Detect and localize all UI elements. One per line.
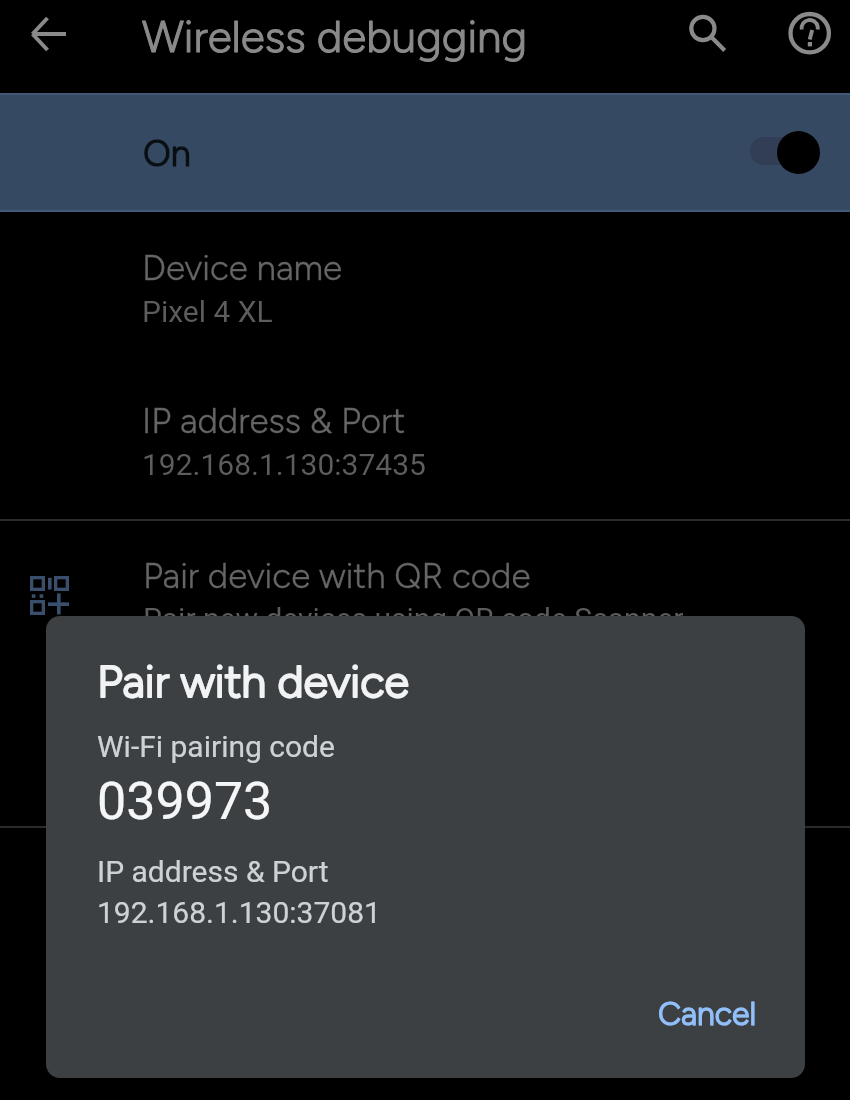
staticText: 192.168.1.130:37435 [142,447,426,482]
button[interactable]: On [0,93,850,212]
staticText: IP address & Port [142,400,406,442]
staticText: Device name [142,247,343,289]
staticText: Pair with device [97,654,409,708]
button[interactable]: Pair device with QR code [0,530,850,665]
staticText: Pair new devices using QR code Scanner [143,601,684,636]
staticText: Cancel [658,995,757,1033]
button[interactable]: Cancel [640,983,775,1045]
staticText: Wireless debugging [142,10,528,63]
button[interactable]: Back [10,10,78,78]
staticText: IP address & Port [142,400,406,442]
button[interactable]: Help [776,0,844,68]
button[interactable]: Search [669,0,737,68]
staticText: Wireless debugging [142,10,528,63]
staticText: 192.168.1.130:37081 [97,895,381,930]
staticText: IP address & Port [97,854,329,889]
staticText: On [143,132,191,175]
staticText: 039973 [97,771,273,832]
button[interactable]: Device name [0,225,850,360]
staticText: Pair device with QR code [143,555,531,597]
staticText: Pair with device [97,654,409,708]
staticText: Wi-Fi pairing code [97,729,335,764]
button[interactable]: IP address & Port [0,378,850,513]
staticText: Pair device with QR code [143,555,531,597]
staticText: Pixel 4 XL [142,294,273,329]
staticText: Device name [142,247,343,289]
staticText: On [143,132,191,175]
staticText: Cancel [658,995,757,1033]
